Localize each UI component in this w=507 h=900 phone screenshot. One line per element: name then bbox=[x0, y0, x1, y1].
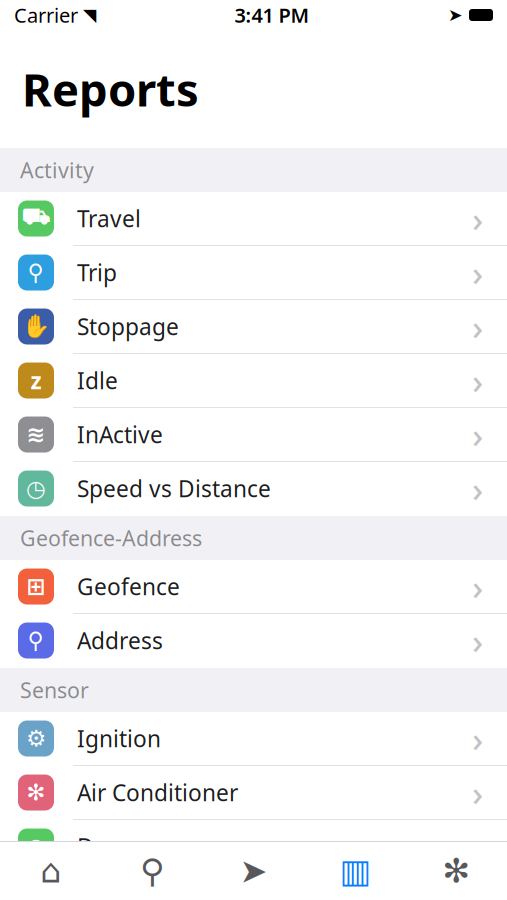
staticText: › bbox=[472, 465, 483, 511]
staticText: ≋ bbox=[26, 422, 45, 447]
staticText: z bbox=[30, 365, 41, 395]
staticText: › bbox=[472, 249, 483, 295]
staticText: ⊞ bbox=[26, 574, 45, 599]
button[interactable]: ◷ bbox=[0, 462, 507, 516]
button[interactable]: ⚲ bbox=[0, 246, 507, 300]
staticText: › bbox=[472, 303, 483, 349]
button[interactable]: Navigate bbox=[203, 842, 304, 900]
staticText: ⚙ bbox=[26, 726, 46, 751]
staticText: Geofence bbox=[77, 571, 180, 601]
staticText: InActive bbox=[77, 419, 163, 449]
staticText: Trip bbox=[77, 257, 117, 287]
staticText: Door bbox=[77, 831, 131, 861]
staticText: ➤ bbox=[448, 5, 463, 25]
staticText: Travel bbox=[77, 203, 141, 233]
staticText: › bbox=[472, 411, 483, 457]
staticText: Stoppage bbox=[77, 311, 179, 341]
staticText: ➤ bbox=[239, 852, 267, 890]
staticText: ✻ bbox=[26, 780, 45, 805]
staticText: Speed vs Distance bbox=[77, 473, 271, 503]
button[interactable]: Settings bbox=[406, 842, 507, 900]
staticText: Activity bbox=[20, 156, 94, 184]
staticText: › bbox=[472, 769, 483, 815]
button[interactable]: ⊞ bbox=[0, 560, 507, 614]
staticText: 3:41 PM bbox=[234, 2, 309, 28]
staticText: ⚲ bbox=[140, 852, 164, 890]
staticText: › bbox=[472, 563, 483, 609]
staticText: › bbox=[472, 715, 483, 761]
staticText: ⛟ bbox=[21, 207, 50, 229]
button[interactable]: ◉ bbox=[0, 820, 507, 874]
button[interactable]: z bbox=[0, 354, 507, 408]
staticText: ▥ bbox=[339, 852, 370, 890]
staticText: ✻ bbox=[442, 852, 470, 890]
button[interactable]: ✻ bbox=[0, 766, 507, 820]
staticText: › bbox=[472, 357, 483, 403]
staticText: ◷ bbox=[26, 476, 46, 501]
staticText: ◉ bbox=[26, 834, 46, 859]
button[interactable]: ⛟ bbox=[0, 192, 507, 246]
staticText: ◥ bbox=[83, 5, 96, 25]
staticText: Ignition bbox=[77, 723, 161, 753]
button[interactable]: ◈ bbox=[0, 874, 507, 900]
button[interactable]: Reports bbox=[304, 842, 406, 900]
button[interactable]: ✋ bbox=[0, 300, 507, 354]
staticText: Sensor bbox=[20, 676, 89, 704]
staticText: Idle bbox=[77, 365, 118, 395]
button[interactable]: ⚲ bbox=[0, 614, 507, 668]
staticText: Geofence-Address bbox=[20, 524, 202, 552]
staticText: ⚲ bbox=[27, 628, 44, 653]
button[interactable]: ⚙ bbox=[0, 712, 507, 766]
staticText: ⚲ bbox=[27, 260, 44, 285]
staticText: Air Conditioner bbox=[77, 777, 238, 807]
staticText: ✋ bbox=[22, 314, 50, 339]
staticText: ⌂ bbox=[40, 852, 61, 890]
button[interactable]: ≋ bbox=[0, 408, 507, 462]
staticText: › bbox=[472, 617, 483, 663]
button[interactable]: Places bbox=[101, 842, 203, 900]
staticText: › bbox=[472, 195, 483, 241]
staticText: › bbox=[472, 823, 483, 869]
button[interactable]: Home bbox=[0, 842, 101, 900]
staticText: Address bbox=[77, 625, 163, 655]
staticText: Reports bbox=[22, 59, 199, 119]
staticText: Carrier bbox=[14, 2, 78, 28]
